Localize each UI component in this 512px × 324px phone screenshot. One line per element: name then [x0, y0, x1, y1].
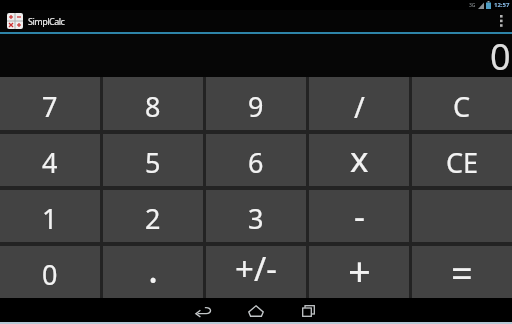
staticText: 6 [248, 144, 264, 181]
staticText: 1 [42, 200, 58, 237]
button[interactable]: . [103, 246, 203, 298]
button[interactable] [246, 303, 266, 319]
button[interactable]: + [309, 246, 409, 298]
staticText: SimplCalc [28, 15, 65, 27]
button[interactable]: 2 [103, 190, 203, 242]
staticText: 12:57 [494, 1, 510, 9]
button[interactable]: 3 [206, 190, 306, 242]
button[interactable]: 9 [206, 77, 306, 130]
staticText: 9 [248, 88, 264, 125]
staticText: CE [446, 144, 479, 181]
button[interactable]: = [412, 246, 512, 298]
button[interactable]: 8 [103, 77, 203, 130]
staticText: C [453, 88, 471, 125]
staticText: / [354, 87, 365, 126]
button[interactable]: - [309, 190, 409, 242]
staticText: 2 [145, 200, 161, 237]
staticText: x [350, 135, 369, 182]
button[interactable]: 0 [0, 246, 100, 298]
staticText: 0 [490, 32, 511, 75]
staticText: 3 [248, 200, 264, 237]
button[interactable]: x [309, 134, 409, 186]
staticText: 5 [145, 144, 161, 181]
staticText: = [451, 246, 473, 293]
button[interactable]: 5 [103, 134, 203, 186]
staticText: - [354, 193, 365, 239]
button[interactable]: 1 [0, 190, 100, 242]
button[interactable]: C [412, 77, 512, 130]
button[interactable]: 4 [0, 134, 100, 186]
staticText: . [148, 242, 159, 289]
button[interactable]: / [309, 77, 409, 130]
button[interactable] [298, 303, 318, 319]
button[interactable]: 6 [206, 134, 306, 186]
button[interactable] [490, 10, 512, 32]
staticText: 7 [42, 88, 58, 125]
staticText: 8 [145, 88, 161, 125]
staticText: +/- [235, 246, 277, 291]
button[interactable]: 7 [0, 77, 100, 130]
staticText: 3G [469, 2, 476, 9]
staticText: + [348, 243, 371, 290]
staticText: 4 [42, 144, 58, 181]
staticText: 0 [42, 256, 58, 293]
button[interactable] [194, 303, 214, 319]
button[interactable]: CE [412, 134, 512, 186]
button[interactable]: +/- [206, 246, 306, 298]
